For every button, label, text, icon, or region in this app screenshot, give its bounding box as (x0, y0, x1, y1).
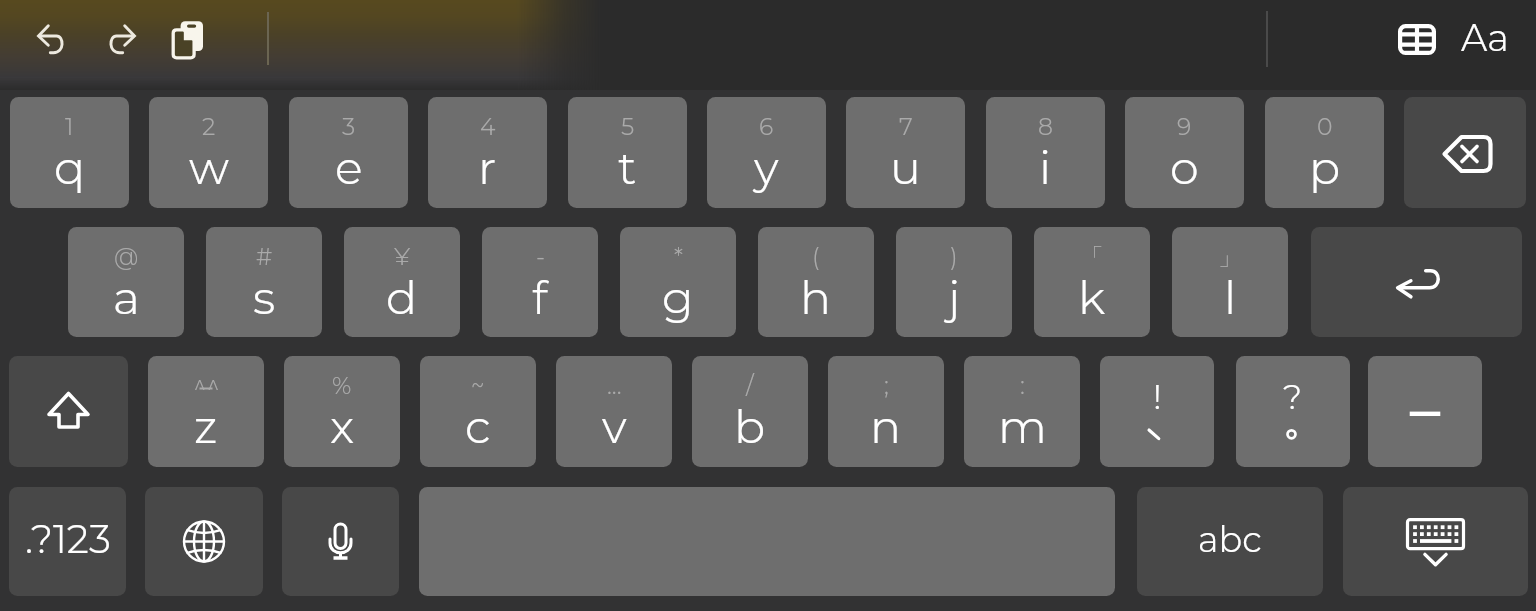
button[interactable]: ! (1100, 356, 1214, 467)
staticText: ! (1153, 376, 1162, 417)
button[interactable]: / (692, 356, 808, 467)
button[interactable]: .?123 (9, 487, 126, 596)
button[interactable]: * (620, 227, 736, 337)
button[interactable]: 「 (1034, 227, 1150, 337)
staticText: d (386, 269, 418, 325)
staticText: Aa (1461, 15, 1509, 60)
staticText: 2 (202, 112, 216, 141)
staticText: : (1020, 371, 1025, 400)
staticText: 6 (759, 112, 774, 141)
staticText: j (948, 269, 961, 325)
staticText: k (1078, 269, 1106, 325)
button[interactable]: 9 (1125, 97, 1244, 208)
staticText: c (465, 398, 491, 454)
staticText: o (1170, 139, 1199, 195)
staticText: - (536, 242, 545, 271)
button[interactable]: ; (828, 356, 944, 467)
staticText: ( (812, 242, 820, 271)
staticText: ? (1283, 376, 1303, 417)
staticText: * (674, 242, 683, 271)
staticText: 1 (65, 112, 74, 141)
button[interactable]: - (482, 227, 598, 337)
button[interactable]: 4 (428, 97, 547, 208)
staticText: z (194, 398, 218, 454)
button[interactable]: Undo (38, 18, 76, 56)
staticText: r (478, 139, 497, 195)
staticText: ; (884, 371, 889, 400)
staticText: e (335, 139, 363, 195)
button[interactable]: Insert table (1398, 24, 1436, 55)
staticText: 9 (1177, 112, 1192, 141)
staticText: 」 (1218, 242, 1242, 272)
button[interactable]: Paste (168, 17, 208, 63)
button[interactable]: Voice input (282, 487, 399, 596)
staticText: s (253, 269, 276, 325)
staticText: .?123 (25, 515, 111, 563)
staticText: @ (114, 242, 139, 271)
staticText: 7 (899, 112, 913, 141)
button[interactable]: ¥ (344, 227, 460, 337)
button[interactable]: 」 (1172, 227, 1288, 337)
button[interactable]: 7 (846, 97, 965, 208)
button[interactable]: 8 (986, 97, 1105, 208)
staticText: 「 (1080, 242, 1104, 272)
staticText: l (1224, 269, 1237, 325)
button[interactable]: abc (1137, 487, 1323, 596)
button[interactable]: Backspace (1404, 97, 1526, 208)
staticText: 8 (1038, 112, 1053, 141)
staticText: 0 (1317, 112, 1333, 141)
staticText: i (1039, 139, 1052, 195)
staticText: ... (607, 371, 622, 400)
staticText: 5 (621, 112, 635, 141)
staticText: q (54, 139, 86, 195)
staticText: 3 (342, 112, 356, 141)
button[interactable]: 6 (707, 97, 826, 208)
staticText: w (189, 139, 229, 195)
button[interactable]: Enter (1311, 227, 1522, 337)
staticText: v (602, 398, 627, 454)
button[interactable]: ) (896, 227, 1012, 337)
button[interactable]: Shift (9, 356, 128, 467)
button[interactable]: Hide keyboard (1343, 487, 1528, 596)
button[interactable]: ^^ (148, 356, 264, 467)
button[interactable]: : (964, 356, 1080, 467)
button[interactable]: @ (68, 227, 184, 337)
staticText: ~ (471, 371, 485, 400)
staticText: # (256, 242, 273, 271)
button[interactable]: 5 (568, 97, 687, 208)
staticText: ) (950, 242, 958, 271)
staticText: y (754, 139, 779, 195)
staticText: abc (1198, 518, 1262, 561)
staticText: a (113, 269, 140, 325)
button[interactable]: ( (758, 227, 874, 337)
button[interactable]: 2 (149, 97, 268, 208)
staticText: n (870, 398, 902, 454)
staticText: x (330, 398, 355, 454)
staticText: b (734, 398, 766, 454)
staticText: ^^ (193, 371, 220, 400)
staticText: f (532, 269, 548, 325)
button[interactable]: 3 (289, 97, 408, 208)
staticText: t (618, 139, 637, 195)
button[interactable]: Aa (1461, 13, 1509, 61)
staticText: h (800, 269, 832, 325)
button[interactable]: Switch language (145, 487, 263, 596)
staticText: 4 (480, 112, 496, 141)
button[interactable]: 0 (1265, 97, 1384, 208)
button[interactable]: ... (556, 356, 672, 467)
staticText: p (1309, 139, 1341, 195)
button[interactable]: Dash (1368, 356, 1482, 467)
staticText: g (662, 269, 694, 325)
staticText: m (998, 398, 1047, 454)
button[interactable]: Redo (97, 18, 135, 56)
button[interactable]: ~ (420, 356, 536, 467)
staticText: u (890, 139, 921, 195)
staticText: / (746, 371, 754, 400)
button[interactable]: % (284, 356, 400, 467)
button[interactable]: # (206, 227, 322, 337)
button[interactable]: 1 (10, 97, 129, 208)
staticText: % (332, 371, 352, 400)
button[interactable]: ? (1236, 356, 1350, 467)
staticText: ¥ (394, 242, 411, 271)
